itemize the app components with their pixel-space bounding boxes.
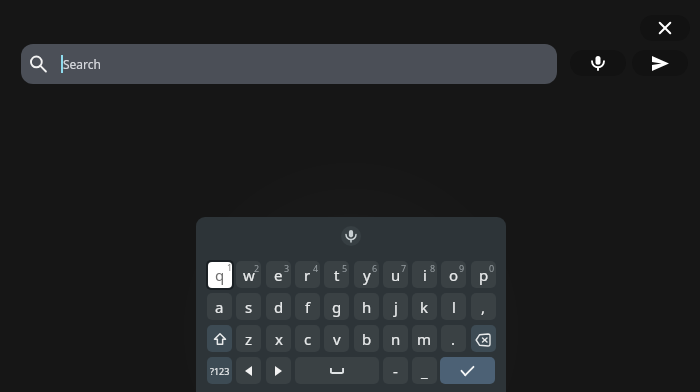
button[interactable]: y — [354, 261, 379, 288]
staticText: - — [393, 361, 398, 381]
button[interactable]: - — [383, 357, 408, 384]
button[interactable]: Send — [632, 50, 688, 76]
button[interactable]: ?123 — [207, 357, 232, 384]
staticText: , — [481, 297, 486, 317]
staticText: u — [391, 265, 401, 285]
staticText: a — [215, 297, 224, 317]
staticText: k — [420, 297, 429, 317]
staticText: v — [333, 329, 341, 349]
staticText: 7 — [401, 262, 407, 274]
button[interactable]: l — [441, 293, 466, 320]
button[interactable]: x — [266, 325, 291, 352]
staticText: z — [245, 329, 253, 349]
button[interactable]: _ — [412, 357, 437, 384]
button[interactable]: i — [412, 261, 437, 288]
staticText: t — [334, 265, 340, 285]
button[interactable]: Close — [640, 15, 690, 41]
button[interactable]: u — [383, 261, 408, 288]
staticText: _ — [421, 361, 428, 381]
staticText: n — [391, 329, 401, 349]
staticText: h — [362, 297, 372, 317]
button[interactable]: m — [412, 325, 437, 352]
button[interactable] — [236, 357, 261, 384]
button[interactable]: s — [236, 293, 261, 320]
staticText: 2 — [254, 262, 260, 274]
staticText: x — [275, 329, 283, 349]
staticText: i — [423, 265, 427, 285]
staticText: 0 — [489, 262, 495, 274]
button[interactable] — [440, 357, 495, 384]
staticText: j — [394, 297, 398, 317]
staticText: c — [304, 329, 312, 349]
button[interactable]: , — [471, 293, 496, 320]
staticText: . — [451, 329, 456, 349]
staticText: q — [215, 265, 225, 285]
button[interactable]: Voice search — [570, 50, 626, 76]
button[interactable] — [207, 325, 232, 352]
staticText: b — [362, 329, 372, 349]
staticText: p — [479, 265, 489, 285]
button[interactable]: o — [441, 261, 466, 288]
button[interactable]: c — [295, 325, 320, 352]
staticText: m — [417, 329, 432, 349]
button[interactable]: . — [441, 325, 466, 352]
button[interactable]: p — [471, 261, 496, 288]
staticText: 3 — [284, 262, 290, 274]
button[interactable]: a — [207, 293, 232, 320]
staticText: g — [332, 297, 342, 317]
button[interactable]: z — [236, 325, 261, 352]
button[interactable]: n — [383, 325, 408, 352]
staticText: w — [243, 265, 255, 285]
button[interactable] — [471, 325, 496, 352]
button[interactable]: q — [206, 260, 234, 290]
button[interactable]: t — [324, 261, 349, 288]
button[interactable]: f — [295, 293, 320, 320]
staticText: ?123 — [210, 365, 230, 377]
staticText: y — [363, 265, 371, 285]
staticText: d — [274, 297, 284, 317]
button[interactable]: h — [354, 293, 379, 320]
button[interactable]: r — [295, 261, 320, 288]
staticText: 6 — [372, 262, 378, 274]
staticText: 8 — [430, 262, 436, 274]
button[interactable]: b — [354, 325, 379, 352]
button[interactable]: Search — [21, 44, 557, 84]
staticText: 5 — [342, 262, 348, 274]
staticText: e — [274, 265, 283, 285]
button[interactable] — [266, 357, 291, 384]
button[interactable]: v — [324, 325, 349, 352]
button[interactable]: j — [383, 293, 408, 320]
staticText: 1 — [227, 261, 233, 273]
staticText: o — [449, 265, 459, 285]
button[interactable] — [295, 357, 379, 384]
staticText: f — [305, 297, 311, 317]
staticText: l — [452, 297, 456, 317]
staticText: r — [304, 265, 311, 285]
button[interactable]: k — [412, 293, 437, 320]
button[interactable]: d — [266, 293, 291, 320]
button[interactable]: g — [324, 293, 349, 320]
button[interactable]: w — [236, 261, 261, 288]
button[interactable]: Voice input — [341, 226, 361, 246]
staticText: s — [245, 297, 253, 317]
staticText: 9 — [459, 262, 465, 274]
staticText: Search — [63, 56, 101, 72]
staticText: 4 — [313, 262, 319, 274]
button[interactable]: e — [266, 261, 291, 288]
